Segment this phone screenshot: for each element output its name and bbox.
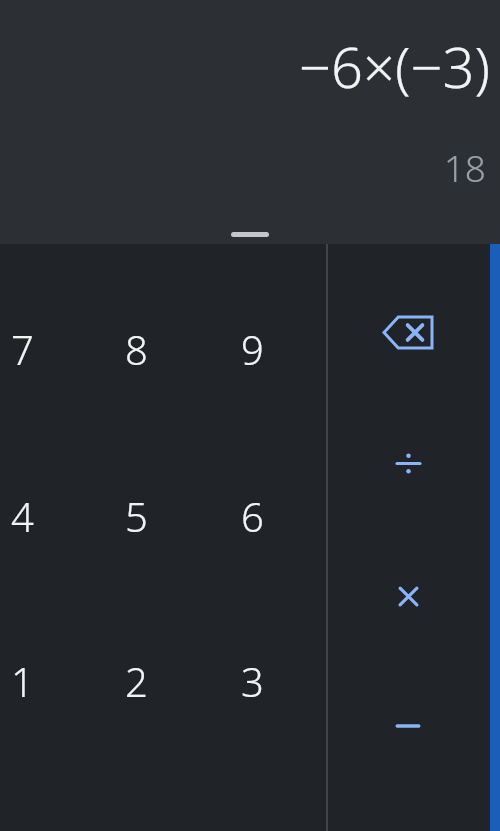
button[interactable]: Drag handle — [231, 232, 269, 237]
button[interactable]: 4 — [0, 474, 64, 558]
staticText: 9 — [241, 322, 264, 376]
staticText: 6 — [241, 489, 264, 543]
button[interactable]: 8 — [94, 307, 178, 391]
staticText: 18 — [443, 142, 486, 192]
button[interactable]: 3 — [210, 639, 294, 723]
staticText: 5 — [125, 489, 148, 543]
button[interactable]: 9 — [210, 307, 294, 391]
staticText: 7 — [11, 322, 34, 376]
button[interactable]: Minus — [364, 688, 452, 764]
staticText: 3 — [241, 654, 264, 708]
button[interactable]: 7 — [0, 307, 64, 391]
staticText: 2 — [125, 654, 148, 708]
button[interactable]: 1 — [0, 639, 64, 723]
button[interactable]: Multiply — [364, 558, 452, 634]
button[interactable]: Divide — [364, 425, 452, 501]
staticText: 1 — [11, 654, 34, 708]
button[interactable]: 2 — [94, 639, 178, 723]
button[interactable]: 5 — [94, 474, 178, 558]
staticText: 8 — [125, 322, 148, 376]
button[interactable]: 6 — [210, 474, 294, 558]
staticText: −6×(−3) — [299, 28, 490, 104]
staticText: 4 — [11, 489, 34, 543]
button[interactable]: Backspace — [364, 294, 452, 370]
